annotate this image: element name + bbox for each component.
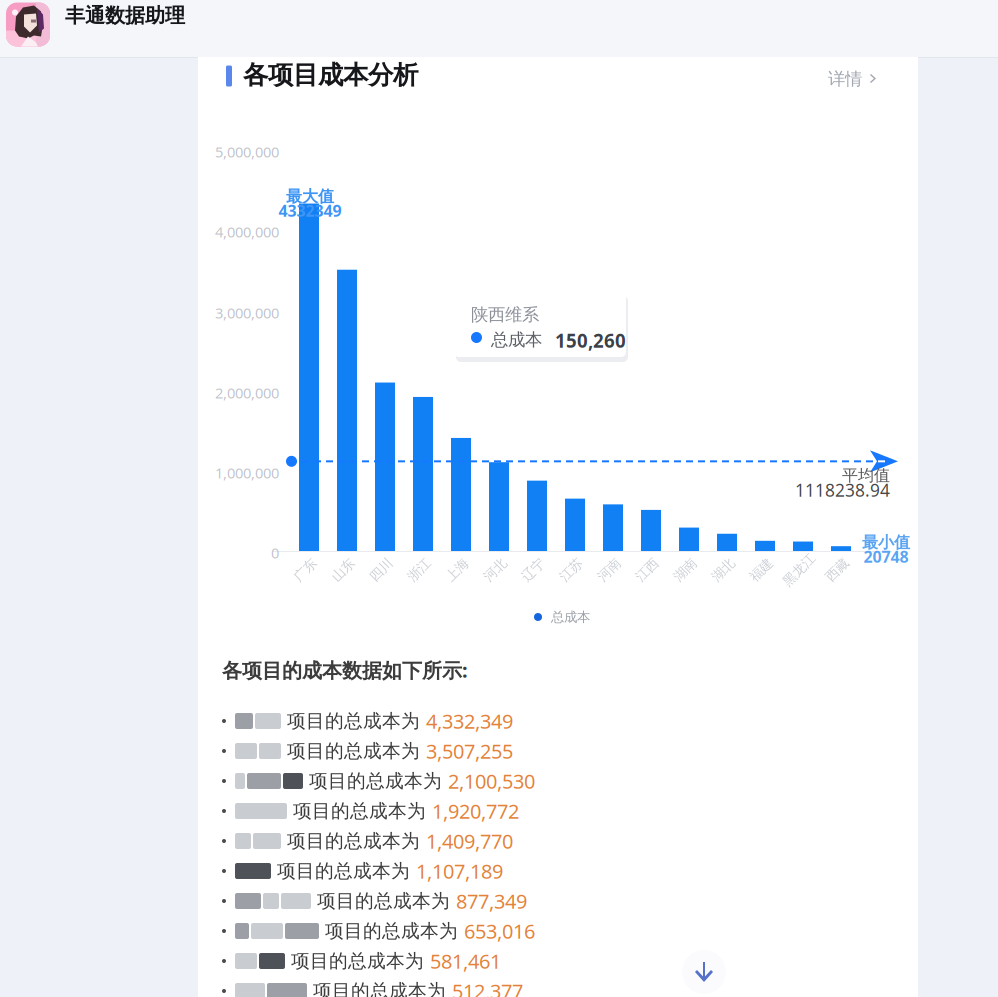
staticText: 江西 xyxy=(634,562,660,578)
staticText: 1,409,770 xyxy=(426,828,513,854)
staticText: 3,000,000 xyxy=(215,303,279,322)
staticText: 20748 xyxy=(863,546,908,567)
staticText: 2,100,530 xyxy=(448,768,535,794)
staticText: 项目的总成本为 xyxy=(311,889,456,912)
staticText: 丰通数据助理 xyxy=(65,3,185,28)
staticText: 各项目成本分析 xyxy=(243,59,418,90)
staticText: 河北 xyxy=(482,562,508,578)
staticText: 上海 xyxy=(444,562,470,578)
staticText: 1118238.94 xyxy=(795,478,890,501)
staticText: 4,332,349 xyxy=(426,708,513,734)
button[interactable]: 详情 xyxy=(814,60,918,98)
staticText: 0 xyxy=(271,543,279,562)
staticText: 江苏 xyxy=(558,562,584,578)
staticText: 581,461 xyxy=(430,948,501,974)
staticText: 湖南 xyxy=(672,562,698,578)
button[interactable]: Scroll to bottom xyxy=(682,950,726,994)
staticText: 150,260 xyxy=(555,328,626,353)
staticText: 辽宁 xyxy=(520,562,546,578)
staticText: 浙江 xyxy=(406,562,432,578)
staticText: 项目的总成本为 xyxy=(281,709,426,732)
staticText: 1,920,772 xyxy=(432,798,519,824)
staticText: 项目的总成本为 xyxy=(307,979,452,997)
staticText: 项目的总成本为 xyxy=(285,949,430,972)
staticText: 山东 xyxy=(330,562,356,578)
staticText: 最小值 xyxy=(862,533,910,552)
staticText: 项目的总成本为 xyxy=(319,919,464,942)
staticText: 项目的总成本为 xyxy=(271,859,416,882)
staticText: 3,507,255 xyxy=(426,738,513,764)
staticText: 2,000,000 xyxy=(215,383,279,402)
staticText: 项目的总成本为 xyxy=(287,799,432,822)
staticText: 总成本 xyxy=(551,609,590,625)
staticText: 平均值 xyxy=(842,466,890,485)
staticText: 4,000,000 xyxy=(215,222,279,241)
staticText: 最大值 xyxy=(286,187,334,206)
staticText: 西藏 xyxy=(824,562,850,578)
staticText: 详情 xyxy=(828,68,862,90)
staticText: 4332349 xyxy=(278,200,341,221)
staticText: 877,349 xyxy=(456,888,527,914)
staticText: 项目的总成本为 xyxy=(281,829,426,852)
staticText: 512,377 xyxy=(452,978,523,997)
staticText: 1,107,189 xyxy=(416,858,503,884)
staticText: 项目的总成本为 xyxy=(303,769,448,792)
staticText: 5,000,000 xyxy=(215,142,279,161)
staticText: 广东 xyxy=(292,562,318,578)
staticText: 总成本 xyxy=(491,329,542,350)
staticText: 653,016 xyxy=(464,918,535,944)
staticText: 黑龙江 xyxy=(779,562,818,578)
staticText: 陕西维系 xyxy=(471,304,539,325)
staticText: 福建 xyxy=(748,562,774,578)
staticText: 河南 xyxy=(596,562,622,578)
staticText: 各项目的成本数据如下所示: xyxy=(222,657,468,683)
staticText: 四川 xyxy=(368,562,394,578)
staticText: 1,000,000 xyxy=(215,463,279,482)
staticText: 湖北 xyxy=(710,562,736,578)
staticText: 项目的总成本为 xyxy=(281,739,426,762)
